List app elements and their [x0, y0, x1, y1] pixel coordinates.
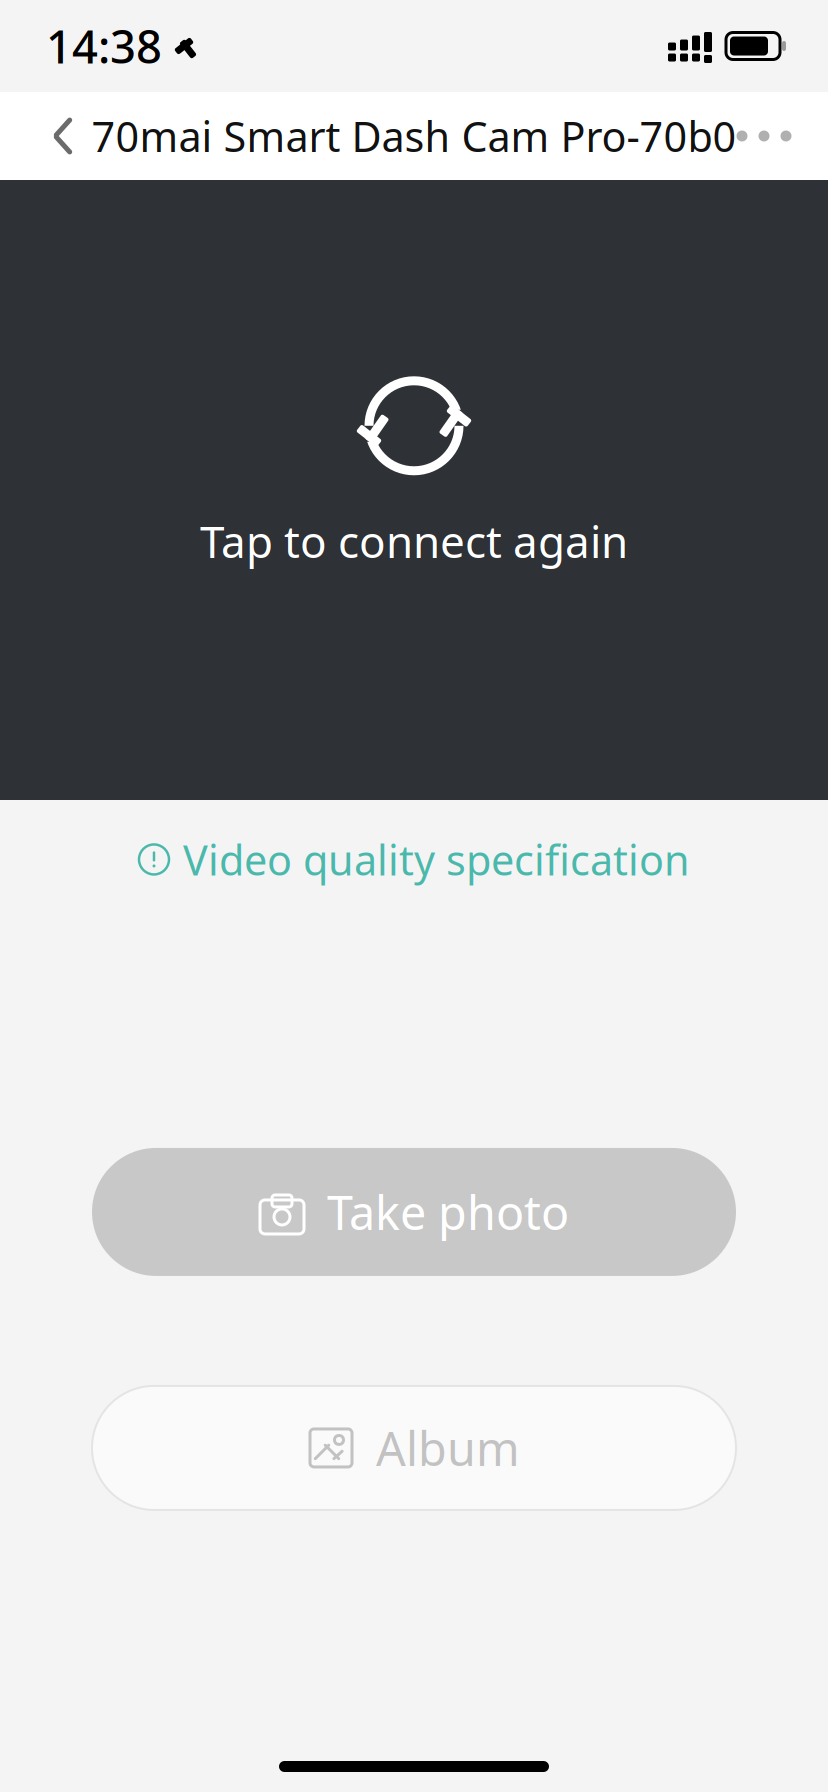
button[interactable]: More options: [714, 92, 814, 180]
staticText: Take photo: [327, 1181, 569, 1243]
button[interactable]: Video quality specification: [118, 822, 710, 897]
staticText: Tap to connect again: [200, 512, 628, 570]
button[interactable]: Back: [18, 92, 108, 180]
button[interactable]: Tap to connect again: [0, 180, 828, 800]
staticText: Album: [376, 1417, 520, 1479]
staticText: 14:38: [46, 16, 162, 76]
staticText: Video quality specification: [183, 832, 690, 887]
button[interactable]: Take photo: [0, 1148, 828, 1276]
staticText: 70mai Smart Dash Cam Pro-70b0: [91, 109, 736, 163]
button[interactable]: Album: [0, 1386, 828, 1510]
